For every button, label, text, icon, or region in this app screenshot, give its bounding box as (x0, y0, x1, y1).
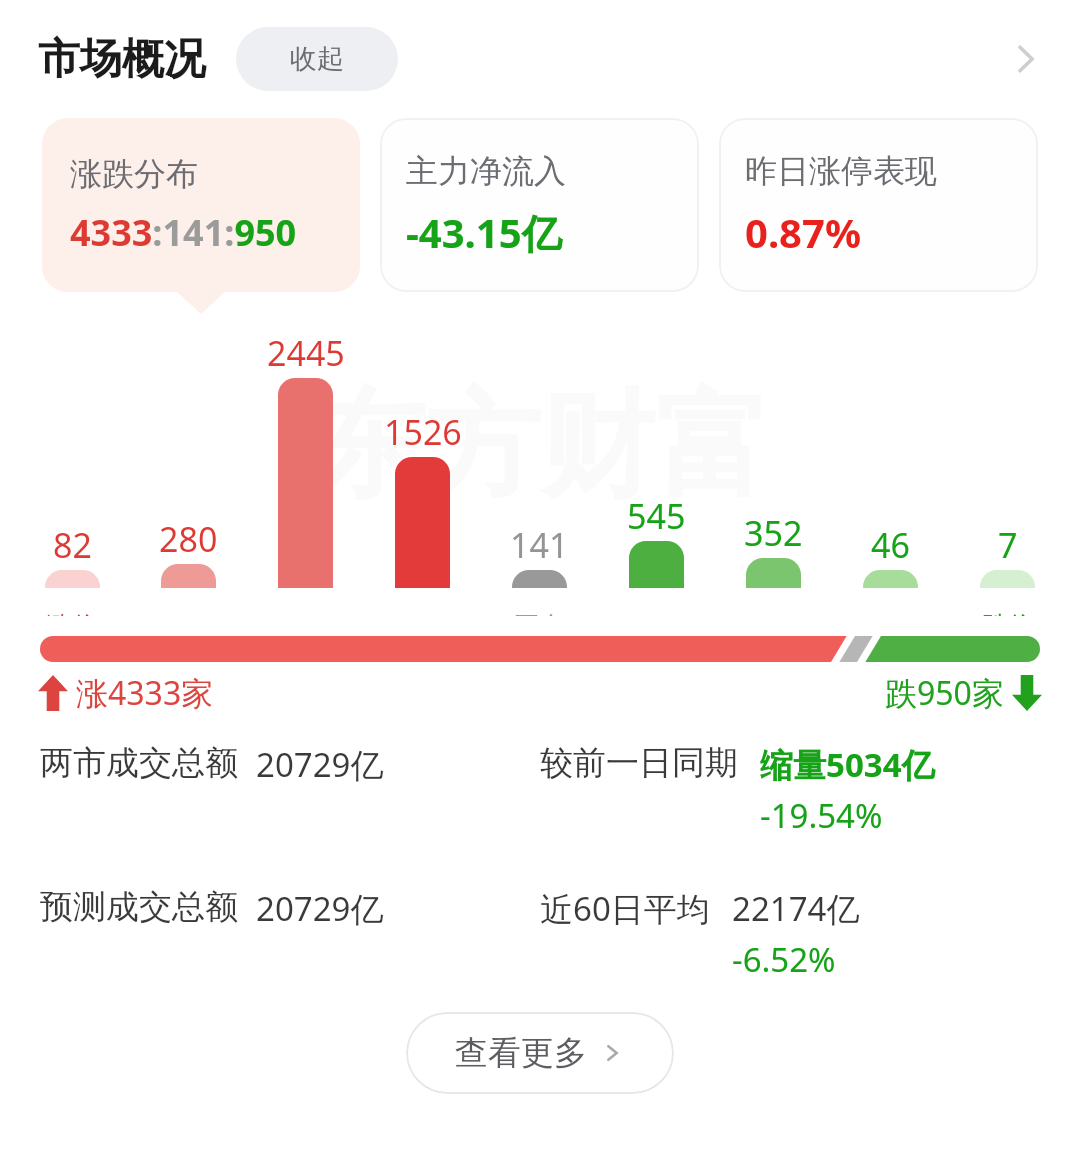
staticText: 4333:141:950 (70, 208, 297, 257)
staticText: 平盘 (514, 610, 566, 616)
staticText: 280 (159, 516, 218, 562)
staticText: 市场概况 (38, 33, 206, 86)
staticText: 主力净流入 (406, 151, 566, 191)
button[interactable]: 主力净流入 (380, 118, 699, 292)
staticText: 涨4333家 (76, 671, 214, 715)
button[interactable]: 涨跌分布 (42, 118, 360, 292)
staticText: 收起 (290, 42, 344, 76)
staticText: 2445 (267, 330, 345, 376)
button[interactable]: 展开市场概况 (990, 24, 1060, 94)
button[interactable]: 查看更多 (406, 1012, 674, 1094)
staticText: 涨停 (46, 610, 98, 616)
staticText: 较前一日同期 (540, 742, 738, 784)
staticText: 预测成交总额 (40, 886, 238, 928)
staticText: 昨日涨停表现 (745, 151, 937, 191)
staticText: 20729亿 (256, 886, 384, 931)
staticText: 20729亿 (256, 742, 384, 787)
staticText: 缩量5034亿 (760, 742, 935, 787)
staticText: 近60日平均 (540, 886, 710, 931)
staticText: -19.54% (760, 793, 883, 838)
staticText: 1526 (384, 409, 462, 455)
staticText: -43.15亿 (406, 205, 562, 260)
staticText: 跌停 (982, 610, 1034, 616)
staticText: 东方财富 (310, 374, 770, 519)
staticText: 141 (510, 522, 569, 568)
staticText: 22174亿 (732, 886, 860, 931)
button[interactable]: 昨日涨停表现 (719, 118, 1038, 292)
staticText: 涨跌分布 (70, 154, 198, 194)
staticText: 352 (744, 510, 803, 556)
staticText: 46 (871, 522, 910, 568)
staticText: 545 (627, 493, 686, 539)
staticText: 查看更多 (455, 1032, 587, 1074)
button[interactable]: 收起 (236, 27, 398, 91)
staticText: 82 (53, 522, 92, 568)
staticText: 0.87% (745, 205, 861, 259)
staticText: 7 (998, 522, 1018, 568)
staticText: 跌950家 (885, 671, 1004, 715)
staticText: 两市成交总额 (40, 742, 238, 784)
staticText: -6.52% (732, 937, 836, 982)
